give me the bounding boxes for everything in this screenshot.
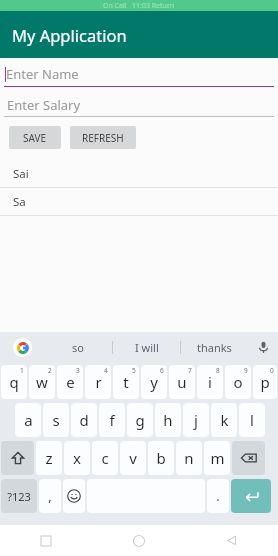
- staticText: p: [260, 372, 270, 392]
- button[interactable]: x: [64, 441, 90, 475]
- button[interactable]: Recent apps: [0, 525, 92, 556]
- button[interactable]: f: [99, 403, 125, 437]
- staticText: g: [135, 410, 145, 430]
- staticText: s: [52, 410, 60, 430]
- button[interactable]: n: [176, 441, 202, 475]
- button[interactable]: b: [148, 441, 174, 475]
- button[interactable]: so: [44, 332, 112, 363]
- button[interactable]: key: [232, 441, 265, 475]
- button[interactable]: y: [141, 365, 167, 399]
- staticText: ?123: [7, 489, 31, 504]
- button[interactable]: Sai: [0, 160, 278, 187]
- staticText: 4: [104, 366, 108, 375]
- staticText: n: [184, 448, 194, 468]
- button[interactable]: k: [211, 403, 237, 437]
- staticText: q: [9, 372, 19, 392]
- staticText: t: [123, 372, 129, 392]
- button[interactable]: thanks: [181, 332, 248, 363]
- button[interactable]: Enter Name: [0, 61, 278, 87]
- button[interactable]: v: [120, 441, 146, 475]
- button[interactable]: q: [1, 365, 27, 399]
- button[interactable]: m: [204, 441, 230, 475]
- staticText: 1: [20, 366, 24, 375]
- button[interactable]: ?123: [1, 479, 37, 513]
- button[interactable]: My Application: [0, 11, 278, 58]
- button[interactable]: ,: [39, 479, 61, 513]
- button[interactable]: SAVE: [9, 126, 61, 149]
- staticText: r: [95, 372, 102, 392]
- staticText: v: [129, 448, 137, 468]
- button[interactable]: l: [239, 403, 265, 437]
- button[interactable]: key: [231, 479, 271, 513]
- button[interactable]: e: [57, 365, 83, 399]
- staticText: h: [163, 410, 173, 430]
- staticText: o: [233, 372, 243, 392]
- button[interactable]: REFRESH: [70, 126, 136, 149]
- staticText: 0: [270, 366, 274, 375]
- staticText: u: [177, 372, 187, 392]
- staticText: Enter Name: [6, 65, 79, 83]
- button[interactable]: j: [183, 403, 209, 437]
- button[interactable]: g: [127, 403, 153, 437]
- button[interactable]: key: [63, 479, 85, 513]
- staticText: k: [220, 410, 229, 430]
- button[interactable]: z: [36, 441, 62, 475]
- staticText: 7: [188, 366, 192, 375]
- staticText: My Application: [12, 24, 127, 46]
- staticText: ,: [48, 487, 52, 505]
- button[interactable]: t: [113, 365, 139, 399]
- staticText: 3: [76, 366, 80, 375]
- button[interactable]: o: [225, 365, 251, 399]
- button[interactable]: r: [85, 365, 111, 399]
- staticText: c: [101, 448, 109, 468]
- button[interactable]: h: [155, 403, 181, 437]
- button[interactable]: Home: [92, 525, 185, 556]
- staticText: x: [73, 448, 81, 468]
- staticText: e: [66, 372, 75, 392]
- staticText: Enter Salary: [7, 96, 81, 114]
- button[interactable]: c: [92, 441, 118, 475]
- staticText: j: [194, 410, 198, 430]
- staticText: f: [109, 410, 115, 430]
- staticText: d: [79, 410, 89, 430]
- button[interactable]: Voice input: [248, 332, 278, 363]
- button[interactable]: key: [1, 441, 34, 475]
- button[interactable]: w: [29, 365, 55, 399]
- staticText: i: [208, 372, 212, 392]
- staticText: l: [250, 410, 254, 430]
- button[interactable]: Back: [185, 525, 278, 556]
- staticText: 9: [244, 366, 248, 375]
- staticText: Sai: [13, 166, 29, 182]
- button[interactable]: s: [43, 403, 69, 437]
- button[interactable]: Enter Salary: [0, 92, 278, 117]
- button[interactable]: I will: [113, 332, 180, 363]
- staticText: y: [150, 372, 158, 392]
- staticText: so: [72, 340, 84, 355]
- staticText: a: [24, 410, 33, 430]
- button[interactable]: .: [207, 479, 229, 513]
- staticText: 2: [48, 366, 52, 375]
- staticText: SAVE: [23, 131, 47, 145]
- staticText: 5: [132, 366, 136, 375]
- staticText: On Call 11:03 Return: [103, 1, 175, 11]
- staticText: 6: [160, 366, 164, 375]
- staticText: REFRESH: [82, 131, 124, 145]
- button[interactable]: u: [169, 365, 195, 399]
- staticText: z: [45, 448, 53, 468]
- staticText: .: [216, 487, 220, 505]
- button[interactable]: Google: [0, 332, 44, 363]
- button[interactable]: p: [253, 365, 277, 399]
- staticText: I will: [135, 340, 159, 355]
- staticText: thanks: [197, 340, 232, 355]
- button[interactable]: a: [15, 403, 41, 437]
- button[interactable]: Sa: [0, 188, 278, 215]
- staticText: 8: [216, 366, 220, 375]
- staticText: b: [156, 448, 166, 468]
- staticText: m: [210, 448, 225, 468]
- staticText: Sa: [13, 194, 26, 210]
- staticText: w: [36, 372, 48, 392]
- button[interactable]: i: [197, 365, 223, 399]
- button[interactable]: d: [71, 403, 97, 437]
